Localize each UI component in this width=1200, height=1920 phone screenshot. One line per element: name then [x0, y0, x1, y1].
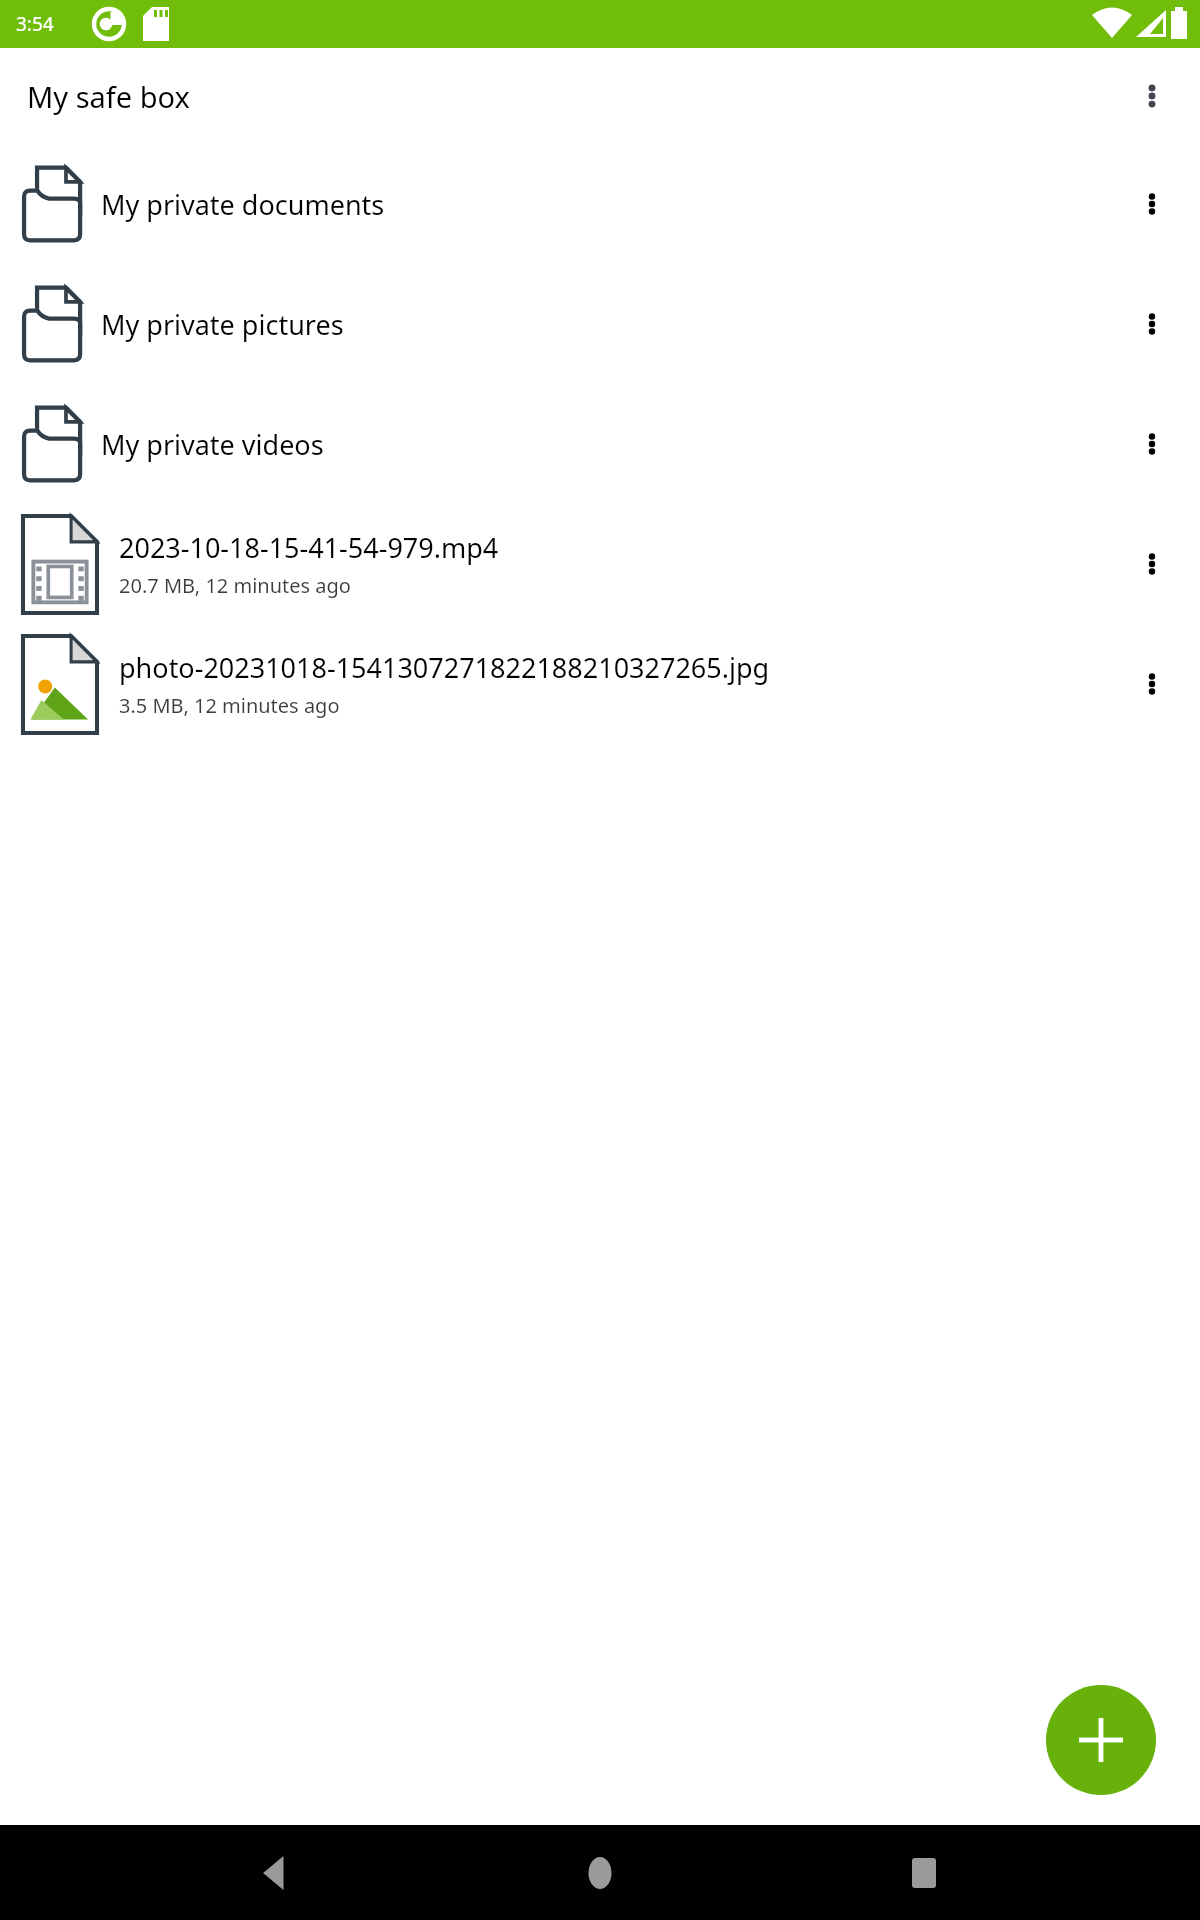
button[interactable]: Back — [228, 1825, 324, 1920]
button[interactable]: Item options — [1116, 408, 1188, 480]
button[interactable]: My private videos — [0, 384, 1200, 504]
button[interactable]: photo-20231018-1541307271822188210327265… — [0, 624, 1200, 744]
button[interactable]: File options — [1116, 648, 1188, 720]
staticText: My private pictures — [101, 306, 1116, 343]
button[interactable]: Recent apps — [876, 1825, 972, 1920]
button[interactable]: Item options — [1116, 168, 1188, 240]
staticText: 3:54 — [16, 11, 54, 37]
button[interactable]: Home — [552, 1825, 648, 1920]
button[interactable]: 2023-10-18-15-41-54-979.mp4 — [0, 504, 1200, 624]
button[interactable]: My private pictures — [0, 264, 1200, 384]
staticText: 2023-10-18-15-41-54-979.mp4 — [119, 529, 499, 566]
staticText: 3.5 MB, 12 minutes ago — [119, 692, 340, 719]
staticText: My safe box — [27, 77, 190, 116]
button[interactable]: File options — [1116, 528, 1188, 600]
staticText: 20.7 MB, 12 minutes ago — [119, 572, 351, 599]
staticText: photo-20231018-1541307271822188210327265… — [119, 649, 770, 686]
button[interactable]: More options — [1124, 68, 1180, 124]
staticText: My private videos — [101, 426, 1116, 463]
button[interactable]: Add — [1046, 1685, 1156, 1795]
staticText: My private documents — [101, 186, 1116, 223]
button[interactable]: My private documents — [0, 144, 1200, 264]
button[interactable]: Item options — [1116, 288, 1188, 360]
